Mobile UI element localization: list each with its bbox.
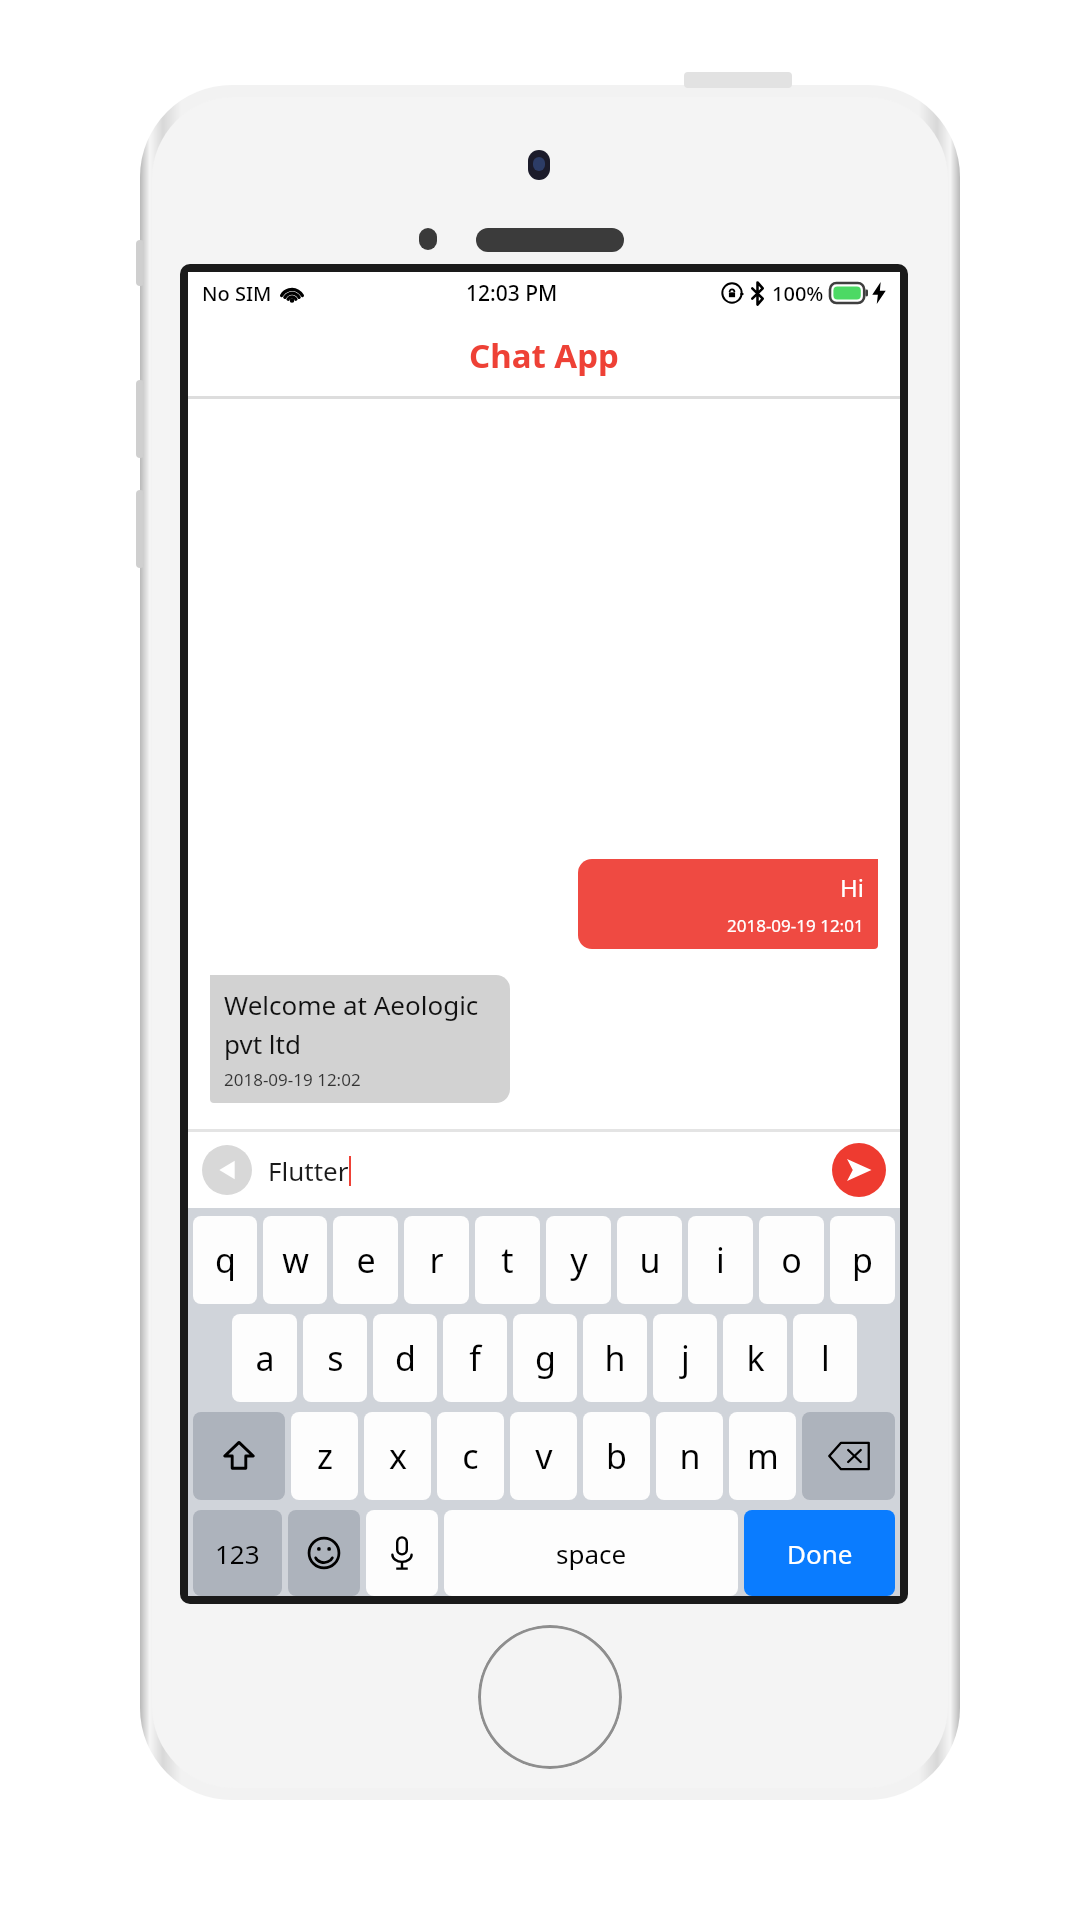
staticText: l [821,1335,830,1381]
button[interactable]: j [653,1314,717,1402]
button[interactable]: Done [744,1510,895,1596]
button[interactable]: e [333,1216,398,1304]
staticText: t [501,1237,514,1283]
staticText: Hi [840,871,864,904]
button[interactable]: Back [202,1145,252,1195]
button[interactable]: y [546,1216,611,1304]
staticText: b [606,1433,627,1479]
button[interactable]: Emoji [288,1510,360,1596]
staticText: g [535,1335,556,1381]
staticText: o [781,1237,802,1283]
staticText: k [746,1335,765,1381]
button[interactable]: x [364,1412,431,1500]
staticText: Chat App [469,333,619,378]
staticText: 2018-09-19 12:01 [727,914,864,937]
button[interactable]: Send [832,1143,886,1197]
button[interactable]: Dictation [366,1510,438,1596]
button[interactable]: f [443,1314,507,1402]
button[interactable]: n [656,1412,723,1500]
staticText: s [327,1335,344,1381]
staticText: h [604,1335,626,1381]
button[interactable]: u [617,1216,682,1304]
button[interactable]: Shift [193,1412,285,1500]
staticText: i [716,1237,725,1283]
button[interactable]: r [404,1216,469,1304]
staticText: Welcome at Aeologic pvt ltd [224,987,479,1062]
button[interactable]: c [437,1412,504,1500]
staticText: m [747,1433,779,1479]
staticText: r [429,1237,444,1283]
staticText: 123 [215,1536,260,1571]
staticText: 2018-09-19 12:02 [224,1068,361,1091]
staticText: Flutter [268,1153,349,1188]
staticText: No SIM [202,280,272,307]
staticText: v [535,1433,553,1479]
button[interactable]: Welcome at Aeologic pvt ltd [210,975,510,1103]
staticText: f [469,1335,481,1381]
button[interactable]: space [444,1510,738,1596]
button[interactable]: m [729,1412,796,1500]
button[interactable]: o [759,1216,824,1304]
staticText: c [462,1433,479,1479]
button[interactable]: p [830,1216,895,1304]
staticText: y [570,1237,588,1283]
staticText: d [395,1335,416,1381]
staticText: x [389,1433,407,1479]
staticText: j [681,1335,690,1381]
staticText: z [317,1433,333,1479]
button[interactable]: t [475,1216,540,1304]
staticText: q [215,1237,236,1283]
staticText: space [556,1536,627,1571]
button[interactable]: l [793,1314,857,1402]
button[interactable]: z [291,1412,358,1500]
button[interactable]: q [193,1216,257,1304]
button[interactable]: a [232,1314,297,1402]
staticText: Done [787,1536,853,1571]
button[interactable]: Home [478,1625,622,1769]
staticText: e [356,1237,376,1283]
button[interactable]: Backspace [802,1412,895,1500]
button[interactable]: b [583,1412,650,1500]
staticText: 12:03 PM [466,279,558,308]
staticText: u [639,1237,661,1283]
button[interactable]: s [303,1314,367,1402]
staticText: p [852,1237,873,1283]
button[interactable]: h [583,1314,647,1402]
staticText: 100% [772,280,824,307]
button[interactable]: k [723,1314,787,1402]
staticText: w [282,1237,309,1283]
staticText: n [679,1433,701,1479]
button[interactable]: w [263,1216,327,1304]
staticText: a [255,1335,275,1381]
button[interactable]: i [688,1216,753,1304]
button[interactable]: g [513,1314,577,1402]
button[interactable]: v [510,1412,577,1500]
button[interactable]: Hi [578,859,878,949]
button[interactable]: 123 [193,1510,282,1596]
button[interactable]: d [373,1314,437,1402]
